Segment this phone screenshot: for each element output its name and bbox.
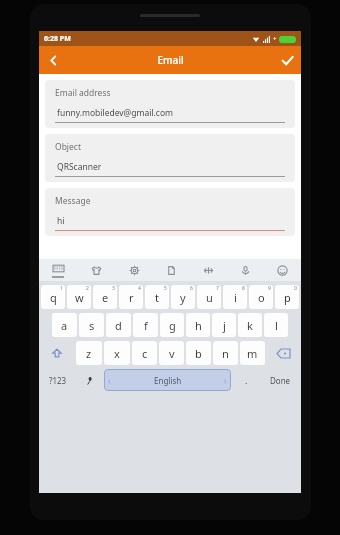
staticText: n <box>222 346 229 361</box>
staticText: ‹ <box>108 375 111 386</box>
staticText: a <box>61 318 68 333</box>
button[interactable]: ?123 <box>39 369 76 391</box>
staticText: ?123 <box>49 375 67 386</box>
staticText: Done <box>270 375 291 386</box>
staticText: 6:28 PM <box>44 34 71 44</box>
button[interactable]: Object <box>45 134 295 182</box>
staticText: English <box>154 375 182 386</box>
button[interactable]: Back <box>39 46 67 74</box>
staticText: 4 <box>138 285 141 292</box>
button[interactable]: . <box>233 369 259 391</box>
staticText: q <box>50 290 57 305</box>
button[interactable]: g <box>160 313 184 337</box>
staticText: 0 <box>294 285 297 292</box>
staticText: r <box>129 290 134 305</box>
button[interactable]: l <box>264 313 288 337</box>
button[interactable]: s <box>79 313 104 337</box>
staticText: e <box>102 290 109 305</box>
staticText: b <box>195 346 202 361</box>
button[interactable]: z <box>76 341 102 365</box>
button[interactable]: w <box>67 285 91 309</box>
staticText: p <box>284 290 291 305</box>
staticText: u <box>206 290 213 305</box>
button[interactable]: Keyboard tool 2 <box>115 259 153 281</box>
button[interactable]: Keyboard tool 3 <box>153 259 190 281</box>
button[interactable]: Send <box>273 46 301 74</box>
staticText: w <box>75 290 84 305</box>
button[interactable]: b <box>186 341 211 365</box>
button[interactable]: r <box>119 285 143 309</box>
button[interactable]: Email address <box>45 80 295 128</box>
staticText: o <box>258 290 265 305</box>
button[interactable]: j <box>212 313 236 337</box>
button[interactable]: h <box>186 313 210 337</box>
button[interactable]: m <box>240 341 265 365</box>
button[interactable]: Message <box>45 188 295 236</box>
staticText: h <box>195 318 202 333</box>
button[interactable]: x <box>104 341 130 365</box>
staticText: x <box>114 346 120 361</box>
button[interactable]: t <box>145 285 169 309</box>
button[interactable]: i <box>223 285 247 309</box>
staticText: Object <box>55 141 82 153</box>
staticText: + <box>273 35 277 43</box>
staticText: 7 <box>216 285 219 292</box>
staticText: l <box>275 318 278 333</box>
staticText: j <box>223 318 226 333</box>
staticText: k <box>247 318 253 333</box>
button[interactable]: Keyboard tool 0 <box>39 259 77 281</box>
button[interactable]: a <box>52 313 77 337</box>
button[interactable]: Keyboard tool 5 <box>227 259 264 281</box>
button[interactable]: Keyboard tool 1 <box>77 259 115 281</box>
button[interactable]: e <box>93 285 117 309</box>
staticText: m <box>247 346 258 361</box>
staticText: 9 <box>268 285 271 292</box>
button[interactable]: d <box>106 313 131 337</box>
button[interactable]: q <box>41 285 65 309</box>
staticText: Message <box>55 195 91 207</box>
staticText: › <box>224 375 227 386</box>
button[interactable]: n <box>213 341 238 365</box>
button[interactable]: Voice input <box>76 369 102 391</box>
staticText: hi <box>57 215 65 227</box>
button[interactable]: Keyboard tool 6 <box>264 259 301 281</box>
staticText: 2 <box>86 285 89 292</box>
staticText: 3 <box>112 285 115 292</box>
staticText: QRScanner <box>57 161 102 173</box>
staticText: c <box>142 346 148 361</box>
staticText: i <box>234 290 237 305</box>
staticText: t <box>155 290 159 305</box>
button[interactable]: f <box>133 313 158 337</box>
button[interactable]: y <box>171 285 195 309</box>
button[interactable]: Backspace <box>266 339 301 367</box>
staticText: 6 <box>190 285 193 292</box>
button[interactable]: u <box>197 285 221 309</box>
staticText: . <box>245 374 248 386</box>
button[interactable]: o <box>249 285 273 309</box>
staticText: Email address <box>55 87 111 99</box>
button[interactable]: English <box>104 369 231 391</box>
staticText: z <box>86 346 92 361</box>
staticText: d <box>115 318 122 333</box>
staticText: v <box>169 346 175 361</box>
staticText: 1 <box>60 285 63 292</box>
button[interactable]: Done <box>259 369 301 391</box>
staticText: 8 <box>242 285 245 292</box>
button[interactable]: c <box>132 341 157 365</box>
button[interactable]: p <box>275 285 299 309</box>
staticText: 5 <box>164 285 167 292</box>
staticText: f <box>144 318 148 333</box>
staticText: Email <box>157 53 184 67</box>
button[interactable]: v <box>159 341 184 365</box>
staticText: y <box>180 290 186 305</box>
staticText: funny.mobiledev@gmail.com <box>57 107 174 119</box>
staticText: s <box>89 318 95 333</box>
button[interactable]: Shift <box>39 339 75 367</box>
button[interactable]: Keyboard tool 4 <box>190 259 227 281</box>
staticText: g <box>169 318 176 333</box>
button[interactable]: k <box>238 313 262 337</box>
